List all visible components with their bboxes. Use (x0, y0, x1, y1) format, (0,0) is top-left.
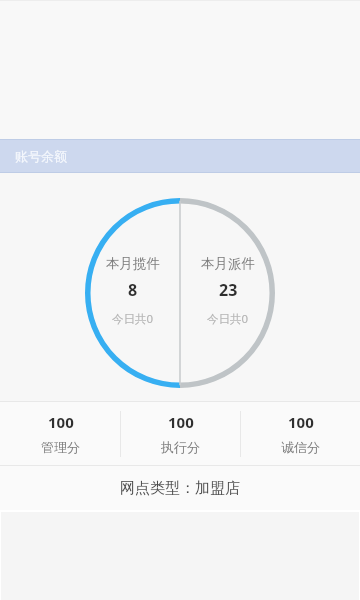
button[interactable]: 本月揽件 (85, 198, 180, 388)
button[interactable]: 本月派件 (180, 198, 275, 388)
staticText: 今日共0 (112, 311, 154, 327)
button[interactable]: 100 (0, 401, 120, 466)
staticText: 网点类型：加盟店 (120, 479, 240, 498)
staticText: 100 (168, 412, 194, 432)
button[interactable]: 账号余额 (0, 139, 360, 173)
staticText: 本月派件 (201, 255, 255, 272)
staticText: 管理分 (41, 439, 80, 455)
staticText: 23 (219, 279, 238, 301)
staticText: 本月揽件 (106, 255, 160, 272)
staticText: 诚信分 (281, 439, 320, 455)
staticText: 今日共0 (207, 311, 249, 327)
staticText: 100 (288, 412, 314, 432)
button[interactable]: 100 (121, 401, 240, 466)
button[interactable]: 网点类型：加盟店 (0, 466, 360, 510)
staticText: 账号余额 (15, 148, 67, 164)
staticText: 8 (128, 279, 138, 301)
staticText: 100 (48, 412, 74, 432)
staticText: 执行分 (161, 439, 200, 455)
button[interactable]: 100 (241, 401, 360, 466)
